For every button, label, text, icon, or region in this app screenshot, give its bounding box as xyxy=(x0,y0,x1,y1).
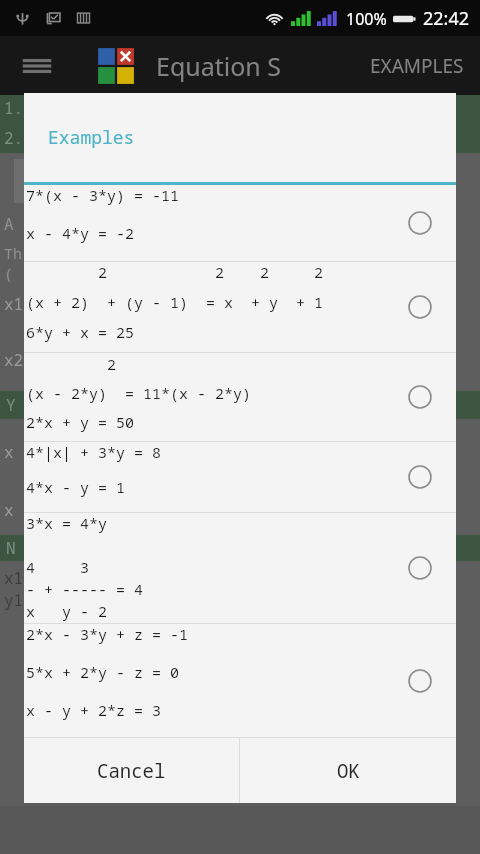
staticText: x - 4*y = -2 xyxy=(26,223,135,261)
staticText: N xyxy=(6,537,16,559)
button[interactable]: 2 2 2 2 xyxy=(24,262,456,352)
staticText: Cancel xyxy=(97,758,166,784)
button[interactable]: 4*|x| + 3*y = 8 xyxy=(24,442,456,512)
staticText: (x + 2) + (y - 1) = x + y + 1 xyxy=(26,292,324,322)
staticText: x xyxy=(4,441,14,463)
staticText: OK xyxy=(337,758,360,784)
staticText: 7*(x - 3*y) = -11 xyxy=(26,185,180,223)
button[interactable]: 2*x - 3*y + z = -1 xyxy=(24,624,456,737)
staticText: x1 xyxy=(4,567,24,589)
staticText: 100% xyxy=(346,8,387,30)
staticText: x xyxy=(4,499,14,521)
button[interactable]: OK xyxy=(240,738,456,803)
button[interactable]: 2 xyxy=(24,353,456,441)
staticText: 1. xyxy=(4,97,24,119)
staticText: 2 xyxy=(26,354,117,383)
button[interactable]: Cancel xyxy=(24,738,239,803)
staticText: (x - 2*y) = 11*(x - 2*y) xyxy=(26,383,252,412)
staticText: Y xyxy=(6,394,16,416)
staticText: ( xyxy=(4,263,14,283)
staticText: Th xyxy=(4,243,23,263)
staticText: x1 xyxy=(4,293,24,315)
staticText: 6*y + x = 25 xyxy=(26,322,135,352)
staticText: x2 xyxy=(4,349,24,371)
staticText: 4 3 xyxy=(26,557,90,579)
staticText: 5*x + 2*y - z = 0 xyxy=(26,662,180,700)
staticText: 4*x - y = 1 xyxy=(26,477,126,512)
staticText: Examples xyxy=(48,125,135,150)
staticText: 3*x = 4*y xyxy=(26,513,108,535)
staticText: 2*x + y = 50 xyxy=(26,412,135,441)
staticText: EXAMPLES xyxy=(370,53,464,79)
staticText: - + ----- = 4 xyxy=(26,579,144,601)
staticText: y1 = 0.0 xyxy=(4,589,91,611)
staticText: 2. xyxy=(4,127,24,149)
staticText: 2 2 2 2 xyxy=(26,262,324,292)
staticText: x y - 2 xyxy=(26,601,108,623)
staticText: x - y + 2*z = 3 xyxy=(26,700,162,737)
button[interactable]: Menu xyxy=(20,49,54,83)
staticText: 4*|x| + 3*y = 8 xyxy=(26,442,162,477)
staticText: Equation S xyxy=(156,49,282,83)
staticText: A xyxy=(4,213,14,235)
button[interactable]: EXAMPLES xyxy=(364,45,470,87)
button[interactable]: 3*x = 4*y xyxy=(24,513,456,623)
button[interactable]: 7*(x - 3*y) = -11 xyxy=(24,185,456,261)
staticText: 2*x - 3*y + z = -1 xyxy=(26,624,189,662)
staticText: 22:42 xyxy=(423,6,470,31)
